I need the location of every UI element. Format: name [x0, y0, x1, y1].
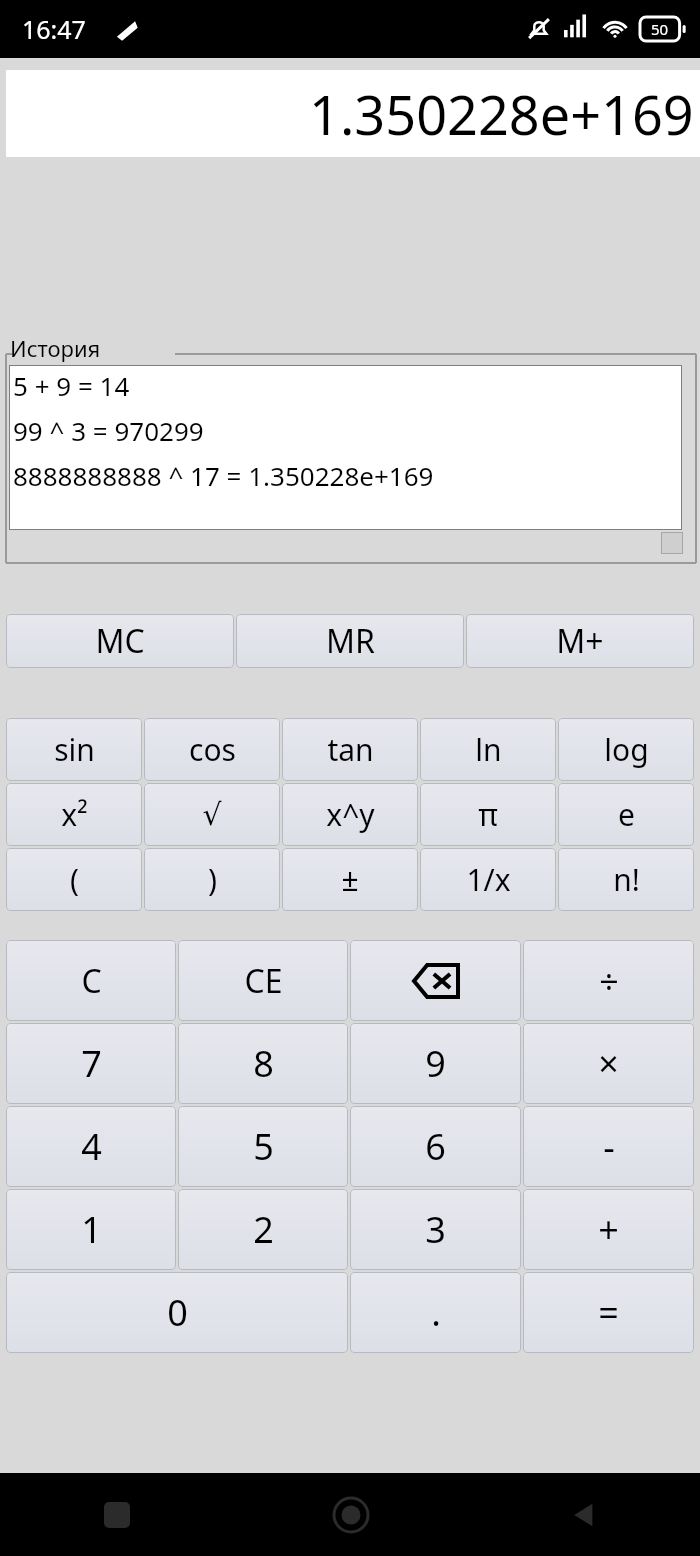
- button[interactable]: 9: [350, 1023, 521, 1104]
- staticText: 2: [253, 1205, 274, 1254]
- staticText: (: [70, 859, 79, 900]
- staticText: ln: [475, 729, 502, 770]
- staticText: ±: [341, 859, 359, 900]
- button[interactable]: e: [558, 783, 694, 846]
- button[interactable]: M+: [466, 614, 694, 668]
- staticText: √: [202, 797, 222, 832]
- button[interactable]: C: [6, 940, 176, 1021]
- button[interactable]: +: [523, 1189, 694, 1270]
- button[interactable]: ±: [282, 848, 418, 911]
- button[interactable]: sin: [6, 718, 142, 781]
- staticText: CE: [244, 959, 283, 1003]
- button[interactable]: =: [523, 1272, 694, 1353]
- staticText: 8888888888 ^ 17 = 1.350228e+169: [13, 458, 434, 493]
- button[interactable]: (: [6, 848, 142, 911]
- button[interactable]: .: [350, 1272, 521, 1353]
- staticText: tan: [327, 729, 374, 770]
- staticText: =: [598, 1288, 619, 1337]
- staticText: cos: [189, 729, 236, 770]
- staticText: n!: [613, 859, 640, 900]
- staticText: 7: [81, 1039, 102, 1088]
- button[interactable]: 2: [178, 1189, 348, 1270]
- staticText: +: [598, 1205, 619, 1254]
- button[interactable]: √: [144, 783, 280, 846]
- button[interactable]: Home: [234, 1473, 467, 1556]
- staticText: 16:47: [22, 12, 86, 46]
- staticText: 0: [167, 1288, 188, 1337]
- button[interactable]: Backspace: [350, 940, 521, 1021]
- staticText: .: [431, 1288, 441, 1337]
- other: Backspace: [414, 959, 458, 1003]
- button[interactable]: -: [523, 1106, 694, 1187]
- button[interactable]: log: [558, 718, 694, 781]
- button[interactable]: 0: [6, 1272, 348, 1353]
- staticText: sin: [54, 729, 95, 770]
- staticText: C: [81, 959, 102, 1003]
- button[interactable]: Back: [467, 1473, 700, 1556]
- staticText: ÷: [599, 958, 619, 1004]
- staticText: 1: [81, 1205, 102, 1254]
- button[interactable]: 1: [6, 1189, 176, 1270]
- staticText: 8: [253, 1039, 274, 1088]
- button[interactable]: 5: [178, 1106, 348, 1187]
- button[interactable]: ln: [420, 718, 556, 781]
- staticText: 1.350228e+169: [309, 77, 694, 151]
- staticText: -: [603, 1122, 615, 1171]
- button[interactable]: 8: [178, 1023, 348, 1104]
- button[interactable]: 7: [6, 1023, 176, 1104]
- staticText: MC: [95, 619, 145, 663]
- staticText: 4: [81, 1122, 102, 1171]
- staticText: MR: [326, 619, 375, 663]
- button[interactable]: cos: [144, 718, 280, 781]
- staticText: 1/x: [466, 859, 511, 900]
- staticText: 5: [253, 1122, 274, 1171]
- button[interactable]: 4: [6, 1106, 176, 1187]
- button[interactable]: 1/x: [420, 848, 556, 911]
- button[interactable]: ): [144, 848, 280, 911]
- staticText: x²: [61, 794, 88, 835]
- button[interactable]: 3: [350, 1189, 521, 1270]
- button[interactable]: ×: [523, 1023, 694, 1104]
- staticText: 9: [425, 1039, 446, 1088]
- staticText: e: [618, 794, 635, 835]
- button[interactable]: MC: [6, 614, 234, 668]
- staticText: x^y: [326, 794, 375, 835]
- staticText: ): [208, 859, 217, 900]
- staticText: 99 ^ 3 = 970299: [13, 413, 204, 448]
- button[interactable]: x²: [6, 783, 142, 846]
- staticText: log: [604, 729, 649, 770]
- button[interactable]: 6: [350, 1106, 521, 1187]
- button[interactable]: Recent apps: [0, 1473, 234, 1556]
- button[interactable]: tan: [282, 718, 418, 781]
- staticText: ×: [598, 1039, 619, 1088]
- button[interactable]: π: [420, 783, 556, 846]
- button[interactable]: n!: [558, 848, 694, 911]
- button[interactable]: x^y: [282, 783, 418, 846]
- button[interactable]: ÷: [523, 940, 694, 1021]
- button[interactable]: CE: [178, 940, 348, 1021]
- staticText: История: [10, 333, 101, 363]
- staticText: 6: [425, 1122, 446, 1171]
- staticText: 5 + 9 = 14: [13, 368, 130, 403]
- button[interactable]: MR: [236, 614, 464, 668]
- staticText: π: [478, 794, 498, 835]
- staticText: M+: [556, 619, 604, 663]
- staticText: 3: [425, 1205, 446, 1254]
- staticText: 50: [651, 19, 669, 39]
